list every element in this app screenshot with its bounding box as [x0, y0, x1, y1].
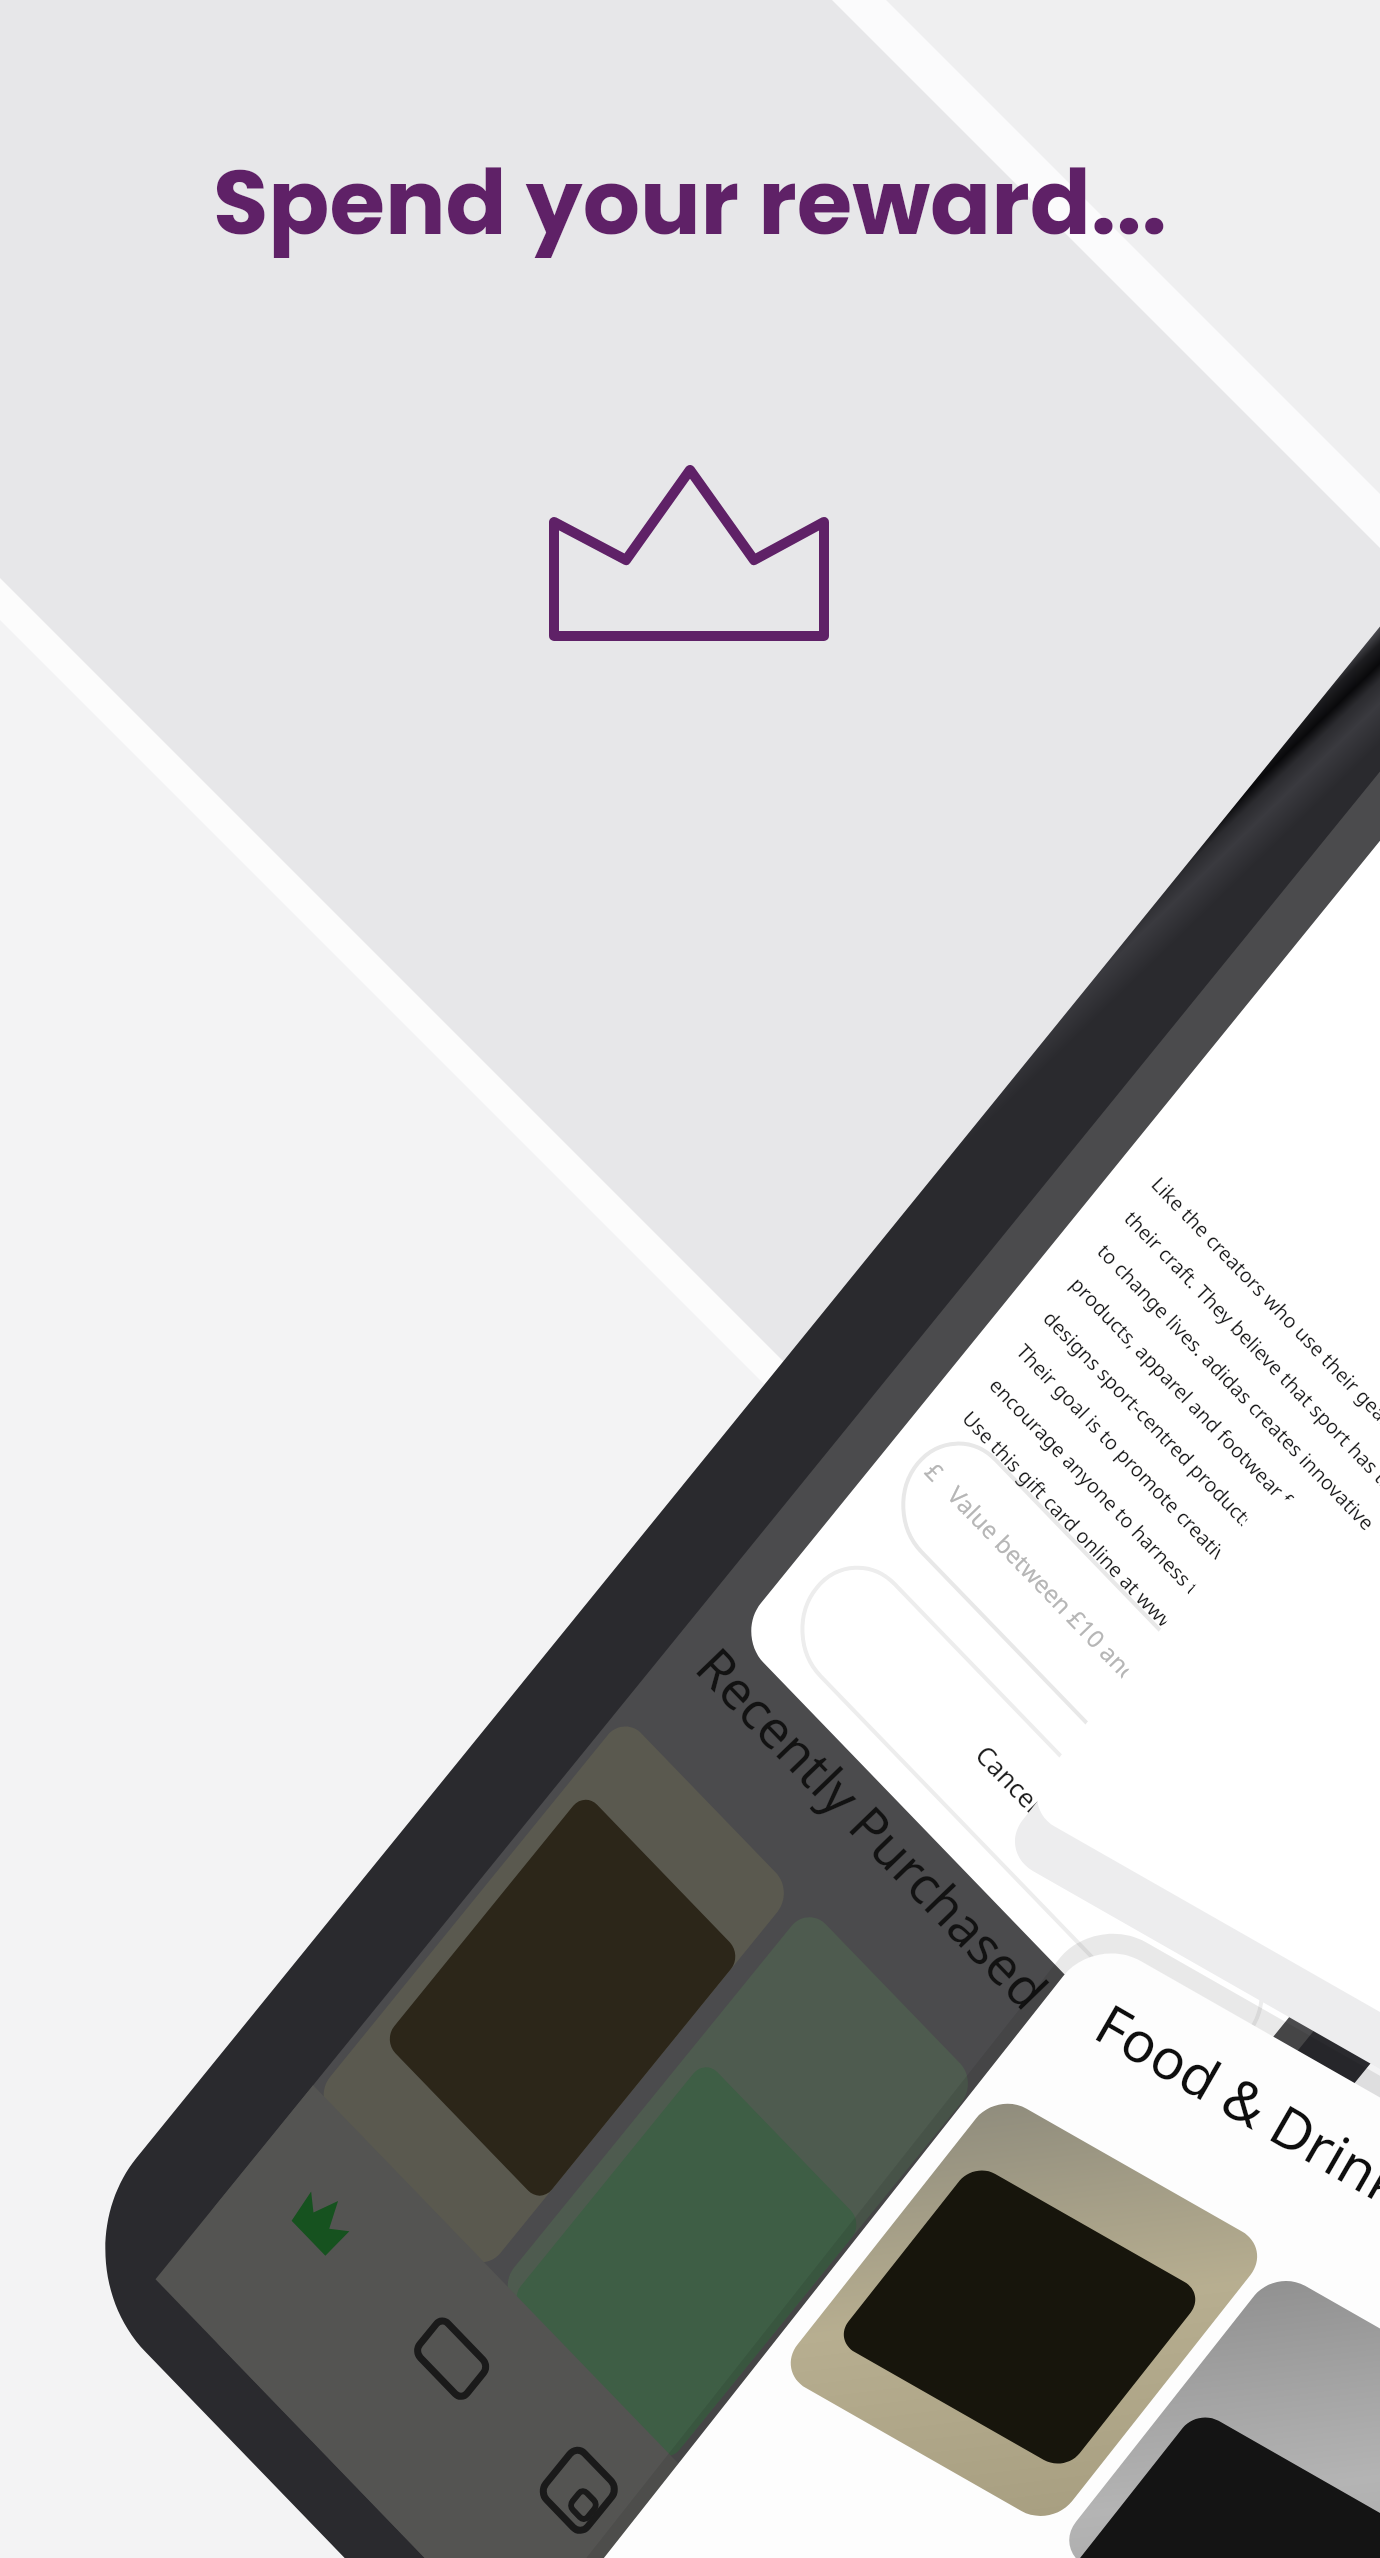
staticText: £ Value between £10 and £100: [918, 1455, 1190, 1735]
staticText: encourage anyone to harness the power of…: [984, 1372, 1326, 1725]
button[interactable]: Rewards crown: [540, 455, 840, 665]
staticText: designs sport-centred products for every…: [1038, 1305, 1352, 1629]
staticText: Cancel: [969, 1737, 1050, 1820]
staticText: Recently Purchased: [682, 1631, 1064, 2023]
staticText: products, apparel and footwear for athle…: [1065, 1271, 1380, 1614]
staticText: Like the creators who use their gear to …: [1146, 1171, 1380, 1502]
staticText: Their goal is to promote creativity and: [1011, 1338, 1278, 1614]
staticText: Food & Drink: [1083, 1985, 1380, 2223]
staticText: their craft. They believe that sport has…: [1119, 1205, 1380, 1552]
staticText: Spend your reward...: [0, 140, 1380, 266]
staticText: to change lives. adidas creates innovati…: [1092, 1238, 1380, 1536]
staticText: Use this gift card online at www.adidas.…: [957, 1405, 1261, 1719]
